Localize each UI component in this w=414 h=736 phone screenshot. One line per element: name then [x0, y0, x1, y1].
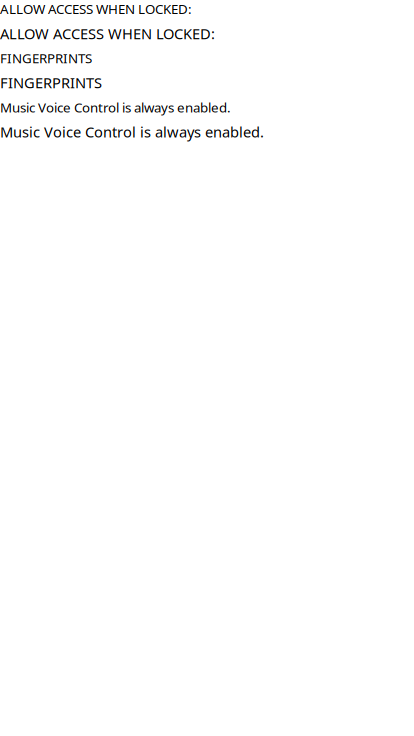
staticText: FINGERPRINTS: [0, 73, 102, 92]
staticText: Music Voice Control is always enabled.: [0, 98, 231, 116]
staticText: ALLOW ACCESS WHEN LOCKED:: [0, 0, 192, 18]
staticText: Music Voice Control is always enabled.: [0, 122, 264, 142]
staticText: ALLOW ACCESS WHEN LOCKED:: [0, 24, 215, 43]
staticText: FINGERPRINTS: [0, 49, 92, 67]
